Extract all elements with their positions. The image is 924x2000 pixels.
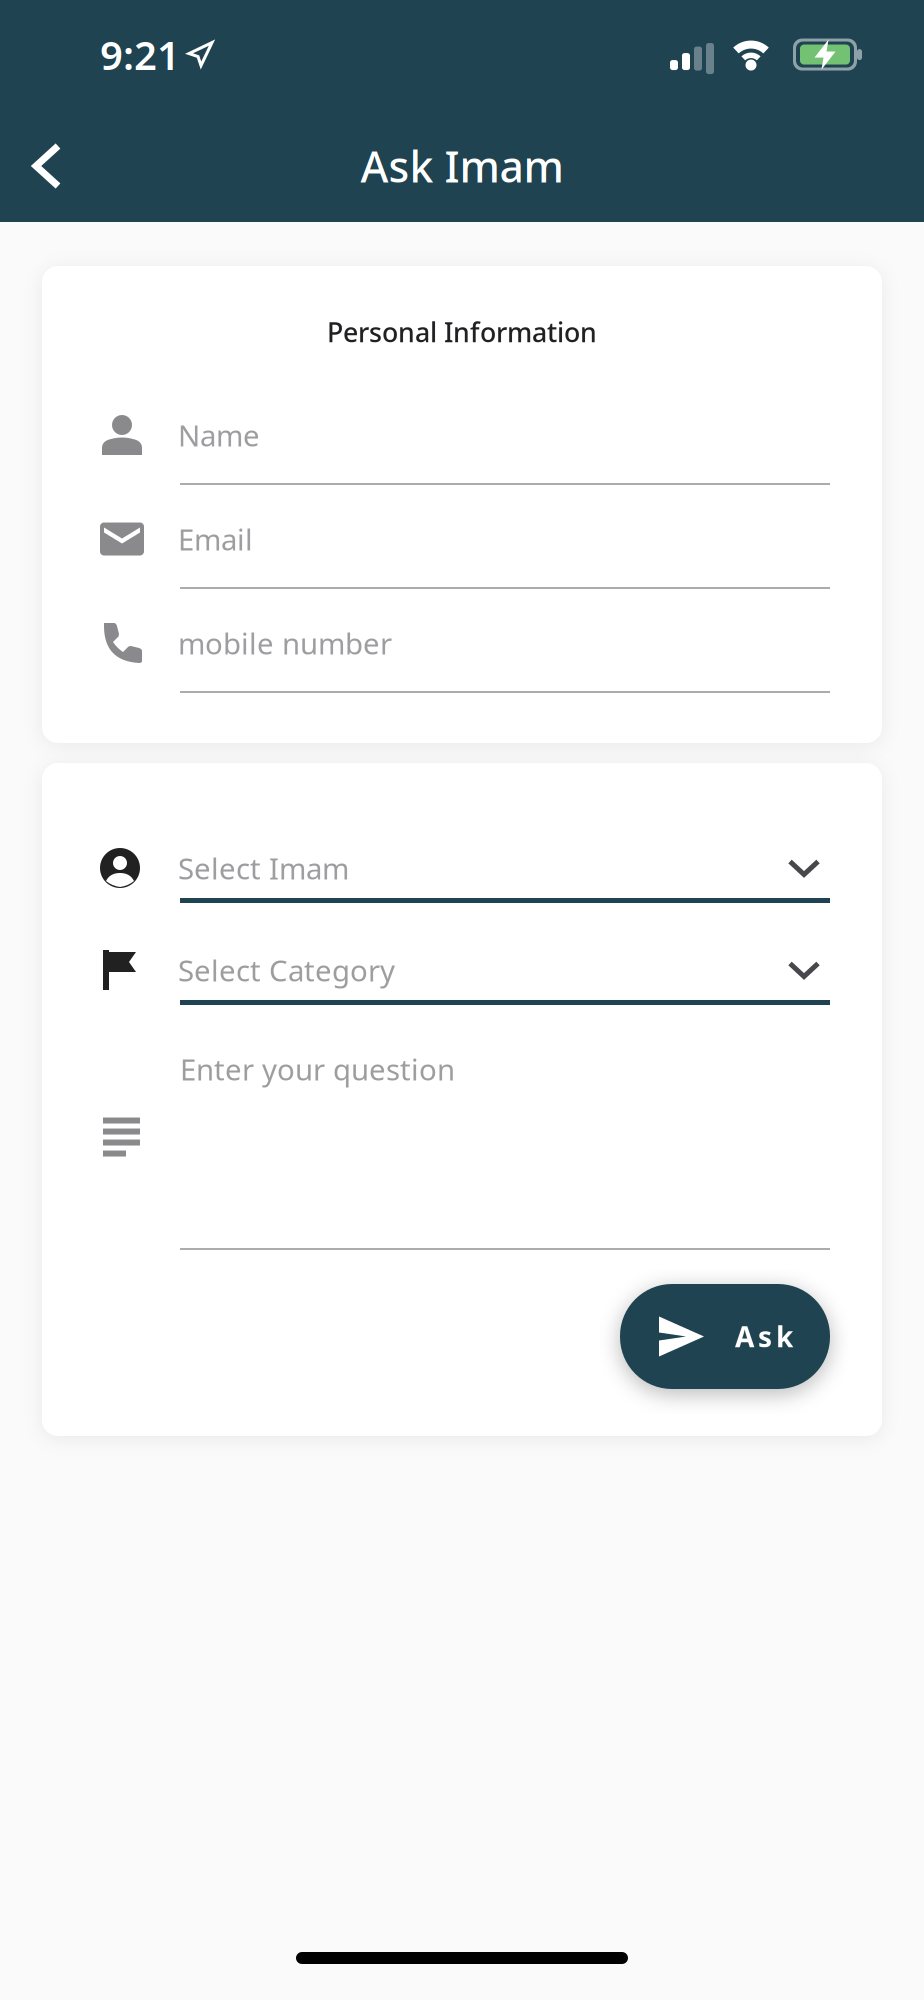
staticText: Select Category [178, 950, 395, 989]
button[interactable]: Back [0, 136, 62, 196]
button[interactable]: Select Category [42, 948, 882, 1005]
button[interactable]: mobile number [42, 621, 882, 693]
staticText: Ask Imam [360, 138, 563, 194]
button[interactable]: Ask [620, 1284, 830, 1389]
button[interactable]: Name [42, 413, 882, 485]
button[interactable]: Select Imam [42, 846, 882, 903]
staticText: 9:21 [100, 28, 180, 81]
staticText: Personal Information [327, 314, 597, 350]
staticText: Name [178, 415, 260, 454]
button[interactable]: Enter your question [42, 1049, 882, 1250]
staticText: Ask [735, 1318, 793, 1355]
staticText: Select Imam [178, 848, 349, 887]
button[interactable]: Email [42, 517, 882, 589]
staticText: mobile number [178, 623, 392, 662]
staticText: Email [178, 519, 253, 558]
staticText: Enter your question [180, 1049, 455, 1088]
